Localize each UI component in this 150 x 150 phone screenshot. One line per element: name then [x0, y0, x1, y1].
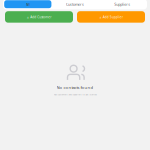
- staticText: Add Customer: [30, 15, 51, 19]
- staticText: +: [27, 14, 29, 20]
- button[interactable]: Customers: [51, 0, 99, 8]
- staticText: Add Supplier: [103, 15, 123, 19]
- button[interactable]: +: [77, 11, 145, 23]
- staticText: Suppliers: [114, 2, 130, 7]
- button[interactable]: All: [4, 0, 51, 8]
- staticText: +: [99, 14, 101, 20]
- staticText: All: [26, 2, 30, 7]
- staticText: Customers: [66, 2, 84, 7]
- button[interactable]: Suppliers: [99, 0, 146, 8]
- button[interactable]: +: [5, 11, 73, 23]
- staticText: Add customers and suppliers to get start…: [53, 93, 96, 96]
- staticText: No contacts found: [56, 84, 93, 90]
